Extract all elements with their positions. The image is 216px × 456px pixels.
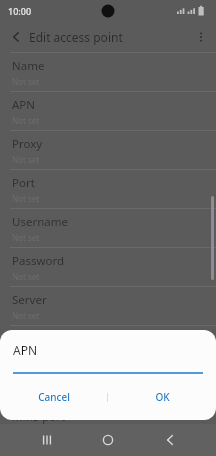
button[interactable]: Cancel: [0, 385, 107, 409]
staticText: Proxy: [12, 136, 43, 152]
staticText: MMSC: [12, 331, 47, 347]
button[interactable]: Back: [155, 425, 185, 455]
button[interactable]: Recents: [32, 425, 62, 455]
button[interactable]: MMSC: [0, 326, 216, 365]
button[interactable]: Password: [0, 248, 216, 287]
staticText: Server: [12, 292, 47, 308]
button[interactable]: More options: [191, 27, 211, 47]
staticText: MMS proxy: [12, 370, 73, 386]
staticText: Not set: [12, 349, 40, 360]
staticText: Cancel: [38, 390, 70, 404]
staticText: Not set: [12, 232, 40, 243]
staticText: Port: [12, 175, 35, 191]
button[interactable]: OK: [108, 385, 216, 409]
staticText: Not set: [12, 76, 40, 87]
staticText: Not set: [12, 115, 40, 126]
staticText: Not set: [12, 193, 40, 204]
staticText: 10:00: [8, 5, 32, 17]
button[interactable]: Back: [9, 30, 23, 44]
staticText: Not set: [12, 388, 40, 399]
staticText: Not set: [12, 271, 40, 282]
staticText: APN: [12, 97, 36, 113]
staticText: APN: [13, 342, 38, 358]
staticText: Not set: [12, 154, 40, 165]
staticText: Username: [12, 214, 68, 230]
button[interactable]: Name: [0, 53, 216, 92]
button[interactable]: MMS port: [0, 404, 216, 443]
button[interactable]: Server: [0, 287, 216, 326]
button[interactable]: Username: [0, 209, 216, 248]
button[interactable]: Home: [93, 425, 123, 455]
button[interactable]: Port: [0, 170, 216, 209]
staticText: OK: [155, 390, 170, 404]
staticText: Edit access point: [29, 29, 123, 45]
staticText: Password: [12, 253, 65, 269]
button[interactable]: APN: [0, 92, 216, 131]
staticText: Name: [12, 58, 45, 74]
button[interactable]: MMS proxy: [0, 365, 216, 404]
staticText: Not set: [12, 310, 40, 321]
staticText: MMS port: [12, 409, 66, 425]
button[interactable]: Proxy: [0, 131, 216, 170]
